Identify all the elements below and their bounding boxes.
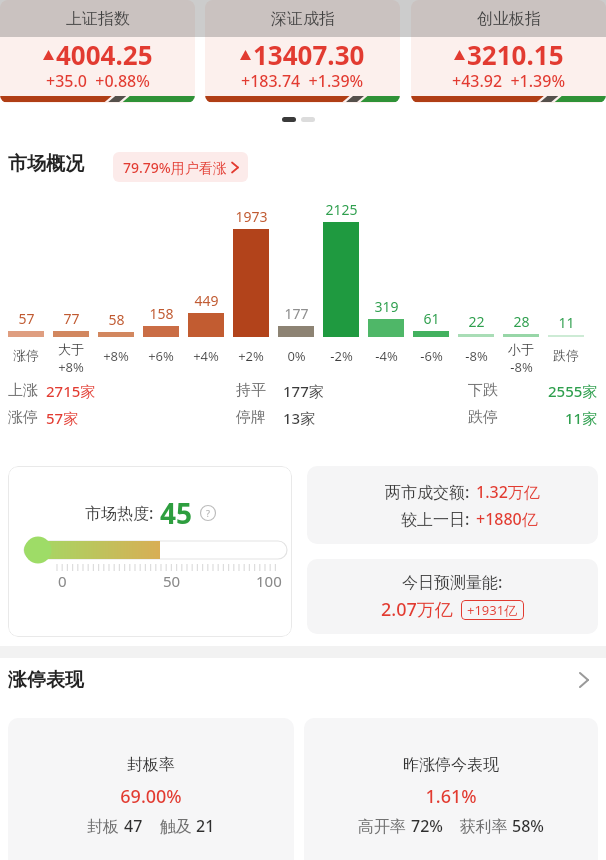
button[interactable]: 今日预测量能: [307,559,598,634]
button[interactable]: 深证成指 [205,0,400,103]
staticText: 4004.25 [56,37,153,72]
staticText: 今日预测量能: [402,571,503,593]
staticText: -8% [465,347,488,365]
staticText: 50 [163,571,181,591]
staticText: 13家 [283,408,316,428]
staticText: 创业板指 [477,9,541,29]
staticText: ? [206,507,211,519]
staticText: 跌停 [553,347,579,363]
staticText: 大于 [58,341,84,357]
staticText: 1973 [235,207,268,226]
button[interactable]: 市场热度: [8,466,292,637]
staticText: +183.74 +1.39% [241,70,364,92]
button[interactable]: 两市成交额: [307,466,598,544]
staticText: 79.79%用户看涨 [123,158,227,177]
staticText: 两市成交额: [385,481,470,503]
staticText: 3210.15 [467,37,564,72]
staticText: 177家 [283,381,324,401]
button[interactable] [580,673,588,687]
staticText: 11 [558,313,575,332]
staticText: -2% [330,347,353,365]
staticText: 封板 [87,815,124,837]
staticText: 市场概况 [8,152,84,176]
staticText: 28 [513,312,530,331]
staticText: +6% [148,347,174,365]
staticText: 停牌 [236,408,266,427]
staticText: 2715家 [46,381,96,401]
staticText: 2.07万亿 [381,597,453,622]
staticText: 72% [411,815,443,837]
button[interactable]: 昨涨停今表现 [304,718,598,860]
staticText: 177 [284,304,309,323]
staticText: 涨停 [8,408,38,427]
staticText: 47 [124,815,143,837]
staticText: +35.0 +0.88% [46,70,150,92]
staticText: 58 [108,310,125,329]
staticText: 13407.30 [253,37,365,72]
staticText: 69.00% [120,784,182,809]
staticText: 深证成指 [271,9,335,29]
staticText: 获利率 [443,815,512,837]
staticText: 封板率 [127,755,175,775]
button[interactable]: 79.79%用户看涨 [113,152,248,182]
button[interactable]: 上证指数 [0,0,195,103]
staticText: -6% [420,347,443,365]
staticText: 57家 [46,408,79,428]
staticText: 2555家 [548,381,598,401]
staticText: 58% [512,815,544,837]
staticText: +4% [193,347,219,365]
staticText: +8% [103,347,129,365]
staticText: 涨停 [13,347,39,363]
staticText: +2% [238,347,264,365]
staticText: +43.92 +1.39% [452,70,566,92]
button[interactable]: 封板率 [8,718,294,860]
staticText: 1.61% [425,784,477,809]
staticText: 61 [423,309,440,328]
staticText: 2125 [325,200,358,219]
staticText: 触及 [143,815,196,837]
staticText: 11家 [565,408,598,428]
staticText: 449 [194,291,219,310]
staticText: 市场热度: [85,502,154,524]
staticText: 持平 [236,381,266,400]
staticText: 跌停 [468,408,498,427]
staticText: +1880亿 [476,508,538,530]
staticText: 100 [256,571,282,591]
staticText: 0 [58,571,67,591]
staticText: 21 [196,815,215,837]
staticText: 0% [287,347,306,365]
staticText: 小于 [508,341,534,357]
staticText: 上涨 [8,381,38,400]
staticText: 较上一日: [401,508,470,530]
staticText: +1931亿 [467,601,518,619]
staticText: -4% [375,347,398,365]
staticText: 1.32万亿 [476,481,540,503]
staticText: -8% [510,358,533,376]
staticText: 高开率 [358,815,411,837]
button[interactable]: 创业板指 [411,0,606,103]
staticText: 57 [18,309,35,328]
staticText: 22 [468,312,485,331]
staticText: 上证指数 [66,9,130,29]
staticText: 158 [149,304,174,323]
staticText: 45 [160,494,193,532]
staticText: 下跌 [468,381,498,400]
staticText: 77 [63,309,80,328]
staticText: 涨停表现 [8,668,84,692]
staticText: +8% [58,358,84,376]
staticText: 319 [374,297,399,316]
staticText: 昨涨停今表现 [403,755,499,775]
